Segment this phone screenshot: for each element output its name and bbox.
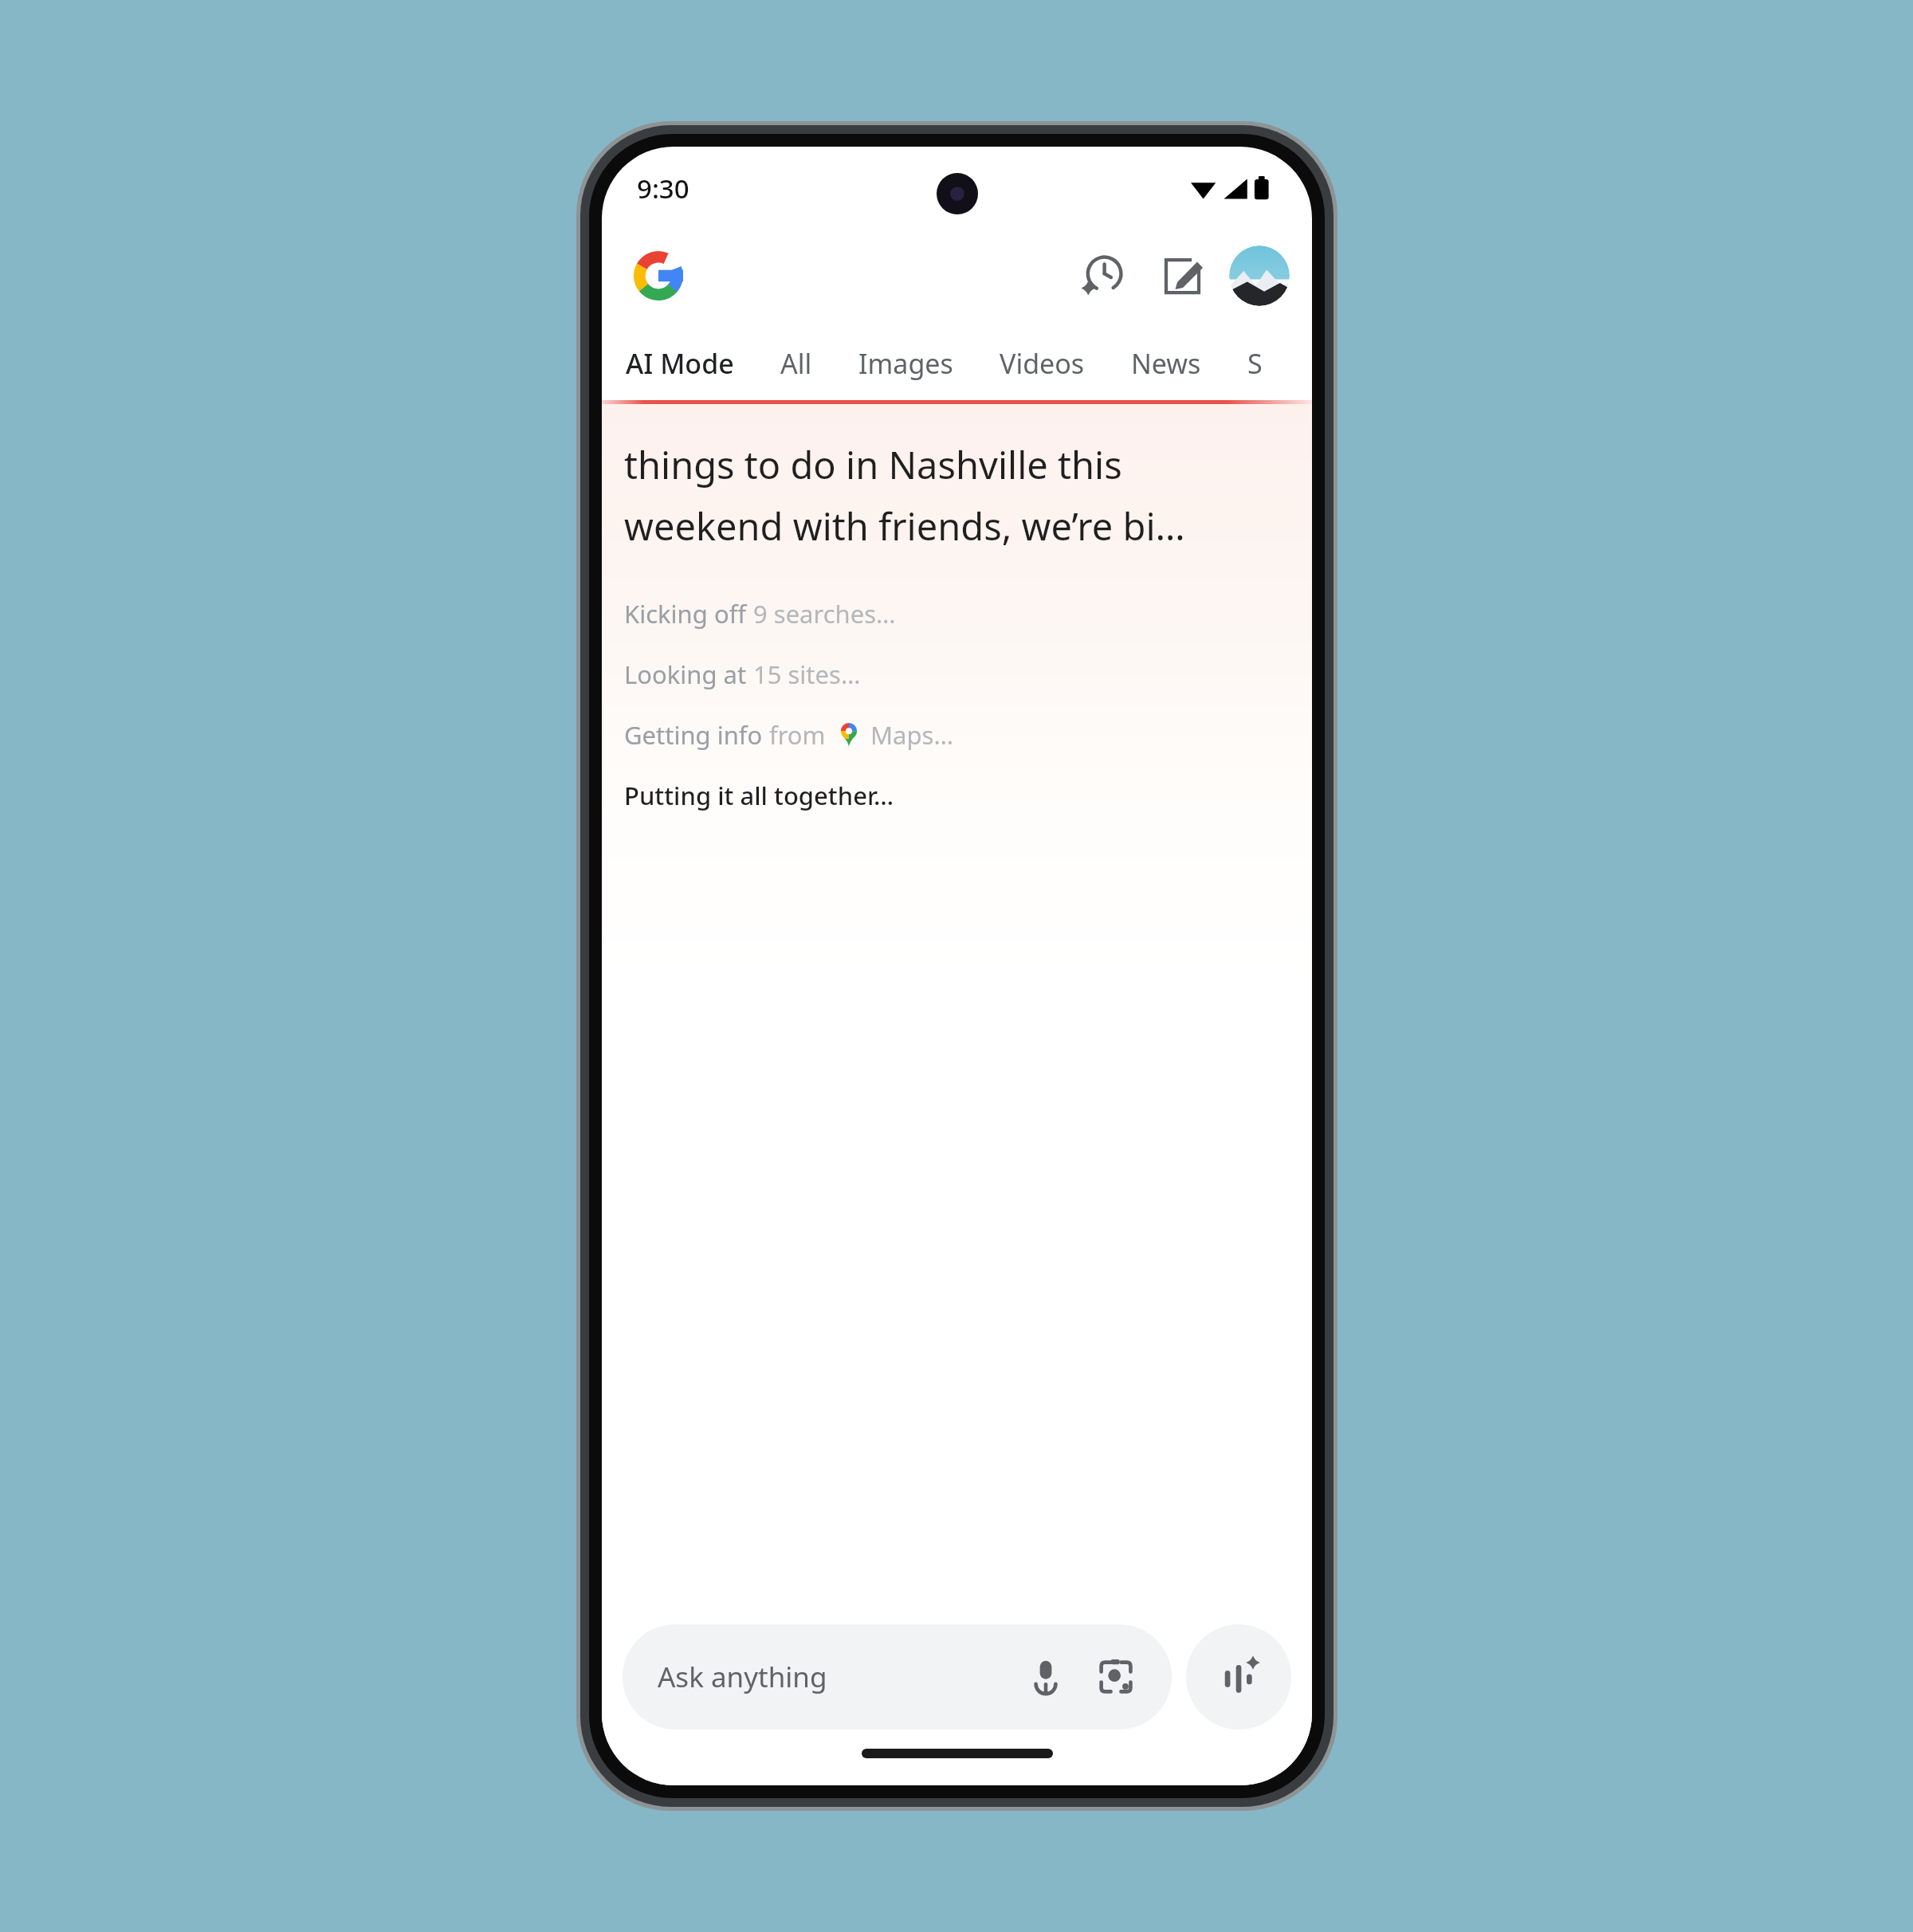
staticText: 9:30 [637,171,689,206]
button[interactable]: AI Mode [626,327,734,400]
staticText: All [780,345,812,382]
staticText: S [1247,345,1263,382]
staticText: things to do in Nashville this weekend w… [624,439,1185,551]
button[interactable]: Account [1229,245,1290,306]
button[interactable]: Edit [1148,241,1216,310]
staticText: Getting info [624,718,769,752]
button[interactable]: Videos [1000,327,1085,400]
staticText: Videos [1000,345,1085,382]
staticText: 15 sites… [753,658,861,691]
button[interactable]: Google Lens [1087,1648,1145,1706]
button[interactable]: News [1131,327,1201,400]
other: Google [634,251,683,300]
button[interactable]: Images [858,327,953,400]
button[interactable]: Google [629,246,688,305]
button[interactable]: S [1247,327,1263,400]
staticText: News [1131,345,1201,382]
staticText: from [769,718,832,752]
staticText: Images [858,345,953,382]
staticText: AI Mode [626,345,734,382]
staticText: Ask anything [658,1658,827,1696]
button[interactable]: Live voice [1186,1624,1291,1730]
staticText: Putting it all together… [624,779,894,812]
button[interactable]: All [780,327,812,400]
staticText: 9 searches… [753,597,896,630]
button[interactable]: Ask anything [623,1624,1172,1730]
staticText: Looking at [624,658,753,691]
staticText: Kicking off [624,597,753,630]
button[interactable]: Voice search [1017,1648,1074,1706]
button[interactable]: History [1068,241,1137,310]
staticText: Maps… [870,718,953,752]
